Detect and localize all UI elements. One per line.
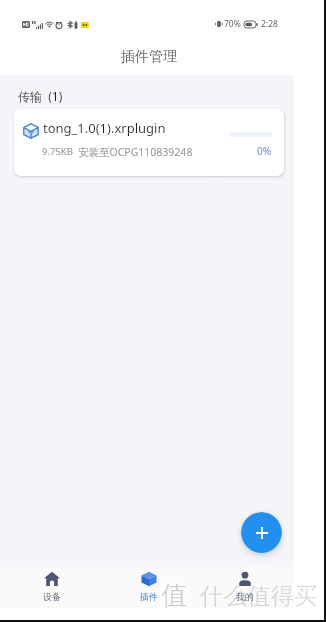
staticText: 传输 (1) [18, 88, 63, 104]
staticText: 9.75KB [42, 145, 73, 158]
staticText: 值 [161, 579, 187, 612]
staticText: 2:28 [261, 18, 278, 30]
button[interactable]: 设备 [25, 567, 79, 608]
staticText: tong_1.0(1).xrplugin [43, 119, 166, 137]
staticText: 安装至OCPG110839248 [78, 145, 193, 159]
staticText: 什么值得买 [200, 581, 318, 611]
button[interactable]: tong_1.0(1).xrplugin [14, 109, 284, 176]
staticText: 0% [257, 144, 272, 158]
staticText: 插件管理 [121, 48, 177, 66]
staticText: 设备 [43, 591, 61, 602]
staticText: 70% [224, 18, 241, 30]
staticText: 插件 [140, 591, 158, 602]
button[interactable]: 插件 [122, 567, 176, 608]
staticText: 我的 [236, 591, 254, 602]
button[interactable]: 我的 [218, 567, 272, 608]
button[interactable]: Add plugin [241, 512, 282, 553]
